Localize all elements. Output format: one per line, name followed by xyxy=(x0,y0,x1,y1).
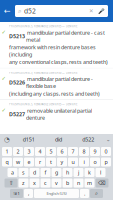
staticText: u xyxy=(71,158,74,166)
button[interactable]: e xyxy=(24,157,34,166)
button[interactable]: q xyxy=(2,157,12,166)
button[interactable]: p xyxy=(101,157,111,166)
button[interactable]: l xyxy=(95,168,105,177)
staticText: did xyxy=(55,136,62,143)
button[interactable]: PROSTHODONTICS, REMOVABLE DENTURES — DEN… xyxy=(0,68,113,100)
staticText: w xyxy=(16,158,20,166)
button[interactable]: 4 xyxy=(35,147,45,156)
staticText: v xyxy=(55,179,58,187)
button[interactable]: t xyxy=(46,157,56,166)
staticText: a xyxy=(11,169,14,176)
staticText: framework with resin denture bases (incl… xyxy=(9,44,96,58)
button[interactable]: n xyxy=(73,178,83,187)
button[interactable]: m xyxy=(84,178,94,187)
button[interactable]: Clear xyxy=(87,5,95,16)
button[interactable]: 7 xyxy=(68,147,78,156)
staticText: D5226 xyxy=(9,79,25,86)
staticText: mandibular partial denture - cast metal xyxy=(26,29,105,43)
button[interactable]: f xyxy=(40,168,50,177)
button[interactable]: w xyxy=(13,157,23,166)
button[interactable]: z xyxy=(18,178,28,187)
staticText: ✕ xyxy=(89,8,93,14)
button[interactable]: PROSTHODONTICS, REMOVABLE DENTURES — DEN… xyxy=(0,100,113,124)
button[interactable]: !#1 xyxy=(10,189,23,198)
button[interactable]: u xyxy=(68,157,78,166)
staticText: ✓ xyxy=(1,107,5,113)
staticText: English (US) xyxy=(46,191,66,196)
staticText: d52 xyxy=(24,7,36,15)
button[interactable]: y xyxy=(57,157,67,166)
button[interactable]: PROSTHODONTICS, REMOVABLE DENTURES — DEN… xyxy=(0,22,113,68)
button[interactable]: d xyxy=(29,168,39,177)
staticText: ✓ xyxy=(1,75,5,81)
button[interactable]: j xyxy=(73,168,83,177)
staticText: 1 xyxy=(5,148,8,155)
button[interactable]: did xyxy=(44,136,73,143)
button[interactable]: Back xyxy=(0,0,15,22)
staticText: 3 xyxy=(27,148,30,155)
staticText: o xyxy=(93,158,96,166)
staticText: D5213 xyxy=(9,33,25,40)
staticText: ⇧ xyxy=(9,180,13,186)
button[interactable]: h xyxy=(62,168,72,177)
button[interactable]: . xyxy=(80,189,89,198)
staticText: c xyxy=(44,179,47,187)
staticText: D5227 xyxy=(9,111,25,118)
staticText: 9 xyxy=(93,148,96,155)
staticText: mandibular partial denture - flexible ba… xyxy=(26,75,93,90)
button[interactable]: ⌫ xyxy=(95,178,108,187)
staticText: ⌄ xyxy=(106,136,110,143)
button[interactable]: k xyxy=(84,168,94,177)
staticText: t xyxy=(50,158,52,166)
button[interactable]: x xyxy=(29,178,39,187)
button[interactable]: 3 xyxy=(24,147,34,156)
button[interactable]: b xyxy=(62,178,72,187)
staticText: ✓ xyxy=(1,29,5,35)
button[interactable]: English (US) xyxy=(34,189,79,198)
button[interactable]: 8 xyxy=(79,147,89,156)
button[interactable]: i xyxy=(79,157,89,166)
button[interactable]: , xyxy=(24,189,33,198)
button[interactable]: d151 xyxy=(14,136,44,143)
button[interactable]: ⌕ xyxy=(90,189,103,198)
button[interactable]: s xyxy=(18,168,28,177)
button[interactable]: a xyxy=(7,168,17,177)
staticText: 8 xyxy=(82,148,85,155)
staticText: d522 xyxy=(82,136,94,143)
button[interactable]: ⇧ xyxy=(4,178,17,187)
staticText: l xyxy=(100,169,101,176)
button[interactable]: c xyxy=(40,178,50,187)
staticText: ⌕ xyxy=(18,8,22,14)
staticText: p xyxy=(104,158,107,166)
button[interactable]: Voice search xyxy=(97,5,105,16)
button[interactable]: Gboard settings xyxy=(0,134,14,144)
staticText: g xyxy=(55,169,58,176)
button[interactable]: g xyxy=(51,168,61,177)
staticText: 7 xyxy=(71,148,74,155)
staticText: n xyxy=(77,179,80,187)
staticText: , xyxy=(28,190,29,197)
staticText: ⌕ xyxy=(95,191,98,196)
button[interactable]: r xyxy=(35,157,45,166)
staticText: ⌫ xyxy=(98,180,106,186)
staticText: ← xyxy=(4,6,11,16)
staticText: 2 xyxy=(16,148,19,155)
button[interactable]: 1 xyxy=(2,147,12,156)
button[interactable]: v xyxy=(51,178,61,187)
button[interactable]: 5 xyxy=(46,147,56,156)
button[interactable]: 0 xyxy=(101,147,111,156)
staticText: f xyxy=(44,169,46,176)
staticText: 0 xyxy=(104,148,107,155)
staticText: 6 xyxy=(60,148,63,155)
button[interactable]: 9 xyxy=(90,147,100,156)
button[interactable]: d522 xyxy=(73,136,103,143)
button[interactable]: 6 xyxy=(57,147,67,156)
button[interactable]: More suggestions xyxy=(103,134,113,144)
staticText: h xyxy=(66,169,69,176)
staticText: . xyxy=(84,190,85,197)
button[interactable]: 2 xyxy=(13,147,23,156)
staticText: y xyxy=(60,158,63,166)
button[interactable]: o xyxy=(90,157,100,166)
staticText: PROSTHODONTICS, REMOVABLE DENTURES — DEN… xyxy=(9,24,77,28)
staticText: q xyxy=(5,158,8,166)
